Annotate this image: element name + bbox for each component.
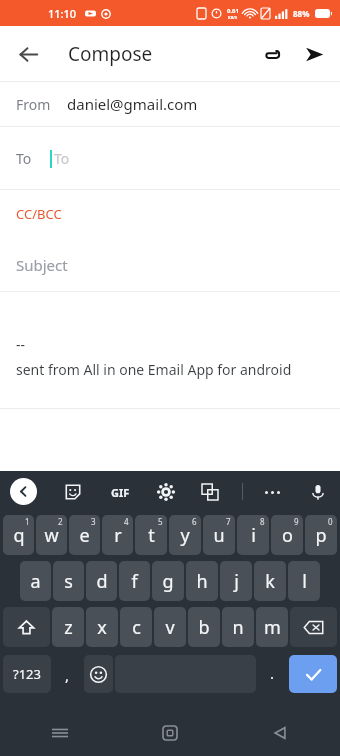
staticText: -- (16, 335, 26, 354)
staticText: m (264, 615, 281, 640)
button[interactable]: v (154, 607, 186, 647)
button[interactable]: h (186, 561, 218, 601)
button[interactable]: Attach (250, 32, 294, 76)
staticText: c (132, 615, 141, 640)
staticText: 0.61 (227, 7, 239, 15)
staticText: j (234, 569, 239, 594)
button[interactable]: b (188, 607, 220, 647)
button[interactable]: Backspace (290, 607, 337, 647)
button[interactable]: i (237, 515, 269, 555)
button[interactable]: Voice input (302, 476, 334, 508)
button[interactable]: Send (292, 32, 336, 76)
button[interactable]: f (119, 561, 150, 601)
staticText: u (213, 523, 225, 548)
button[interactable]: Settings (150, 476, 182, 508)
staticText: 88% (293, 8, 310, 19)
button[interactable]: Shift (3, 607, 50, 647)
button[interactable]: Subject (0, 238, 340, 291)
button[interactable]: p (305, 515, 337, 555)
button[interactable]: CC/BCC (0, 190, 340, 238)
staticText: 8 (260, 516, 265, 527)
button[interactable]: w (36, 515, 67, 555)
staticText: 5 (158, 516, 163, 527)
button[interactable]: -- (0, 292, 340, 408)
staticText: daniel@gmail.com (67, 94, 198, 114)
button[interactable]: From (0, 82, 340, 126)
button[interactable]: s (53, 561, 84, 601)
staticText: k (265, 569, 275, 594)
button[interactable]: Translate (194, 476, 226, 508)
button[interactable]: q (3, 515, 34, 555)
button[interactable]: Recents (40, 713, 80, 753)
staticText: y (180, 523, 190, 548)
button[interactable]: x (86, 607, 118, 647)
staticText: r (114, 523, 122, 548)
staticText: CC/BCC (16, 205, 62, 223)
button[interactable]: j (220, 561, 252, 601)
button[interactable]: , (53, 655, 82, 693)
staticText: , (65, 665, 70, 685)
staticText: 0 (328, 516, 333, 527)
staticText: . (270, 663, 275, 683)
staticText: t (148, 523, 155, 548)
button[interactable]: c (120, 607, 152, 647)
button[interactable]: . (258, 655, 287, 693)
staticText: 4 (124, 516, 129, 527)
staticText: ?123 (13, 665, 41, 683)
staticText: To (54, 149, 70, 168)
staticText: w (44, 523, 59, 548)
staticText: KB/S (228, 15, 238, 20)
staticText: o (282, 523, 293, 548)
button[interactable]: n (222, 607, 254, 647)
button[interactable]: o (271, 515, 303, 555)
staticText: Subject (16, 255, 68, 275)
button[interactable]: Home (150, 713, 190, 753)
staticText: e (79, 523, 90, 548)
button[interactable]: z (52, 607, 84, 647)
staticText: l (302, 569, 307, 594)
staticText: g (162, 569, 174, 594)
staticText: 2 (58, 516, 63, 527)
button[interactable]: Back (6, 32, 50, 76)
button[interactable]: y (169, 515, 201, 555)
staticText: 1 (25, 516, 30, 527)
button[interactable]: Stickers (57, 476, 89, 508)
button[interactable]: Back (260, 713, 300, 753)
staticText: 3 (91, 516, 96, 527)
button[interactable]: k (254, 561, 286, 601)
button[interactable]: GIF (102, 474, 138, 510)
button[interactable]: l (288, 561, 320, 601)
staticText: 7 (226, 516, 231, 527)
staticText: 6 (192, 516, 197, 527)
button[interactable]: a (20, 561, 51, 601)
staticText: h (196, 569, 208, 594)
button[interactable]: d (86, 561, 117, 601)
button[interactable]: Close toolbar (10, 478, 37, 505)
staticText: z (64, 615, 73, 640)
button[interactable]: ?123 (3, 655, 51, 693)
staticText: s (64, 569, 73, 594)
staticText: Compose (68, 41, 153, 67)
button[interactable]: More options (256, 476, 288, 508)
staticText: b (198, 615, 210, 640)
staticText: To (16, 149, 32, 168)
button[interactable]: e (69, 515, 100, 555)
staticText: 11:10 (48, 6, 77, 21)
button[interactable]: u (203, 515, 235, 555)
staticText: i (251, 523, 256, 548)
staticText: x (97, 615, 107, 640)
button[interactable]: Emoji (84, 655, 113, 693)
button[interactable]: r (102, 515, 133, 555)
button[interactable]: Enter (289, 655, 337, 693)
button[interactable]: t (135, 515, 167, 555)
button[interactable]: To (0, 127, 340, 189)
staticText: n (232, 615, 244, 640)
staticText: sent from All in one Email App for andro… (16, 360, 292, 379)
staticText: d (96, 569, 108, 594)
staticText: 9 (294, 516, 299, 527)
button[interactable]: g (152, 561, 184, 601)
staticText: GIF (111, 485, 130, 500)
button[interactable]: m (256, 607, 288, 647)
staticText: a (30, 569, 41, 594)
